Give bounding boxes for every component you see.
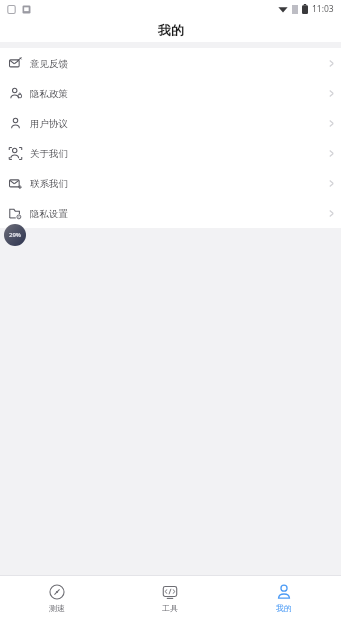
staticText: 工具: [162, 603, 178, 613]
button[interactable]: 意见反馈: [0, 48, 341, 78]
staticText: 关于我们: [30, 148, 68, 160]
button[interactable]: 我的: [227, 579, 341, 618]
staticText: 联系我们: [30, 178, 68, 190]
staticText: 我的: [158, 22, 184, 38]
staticText: 11:03: [312, 3, 334, 15]
button[interactable]: 用户协议: [0, 108, 341, 138]
button[interactable]: 关于我们: [0, 138, 341, 168]
staticText: 隐私政策: [30, 88, 68, 100]
staticText: 我的: [276, 603, 292, 613]
button[interactable]: 测速: [0, 579, 113, 618]
staticText: 用户协议: [30, 118, 68, 130]
button[interactable]: 联系我们: [0, 168, 341, 198]
staticText: 测速: [49, 603, 65, 613]
button[interactable]: 工具: [113, 579, 227, 618]
button[interactable]: 隐私政策: [0, 78, 341, 108]
button[interactable]: Battery 29 percent: [4, 224, 26, 246]
staticText: 隐私设置: [30, 208, 68, 220]
button[interactable]: 隐私设置: [0, 198, 341, 228]
staticText: 意见反馈: [30, 58, 68, 70]
staticText: 29%: [9, 231, 21, 239]
